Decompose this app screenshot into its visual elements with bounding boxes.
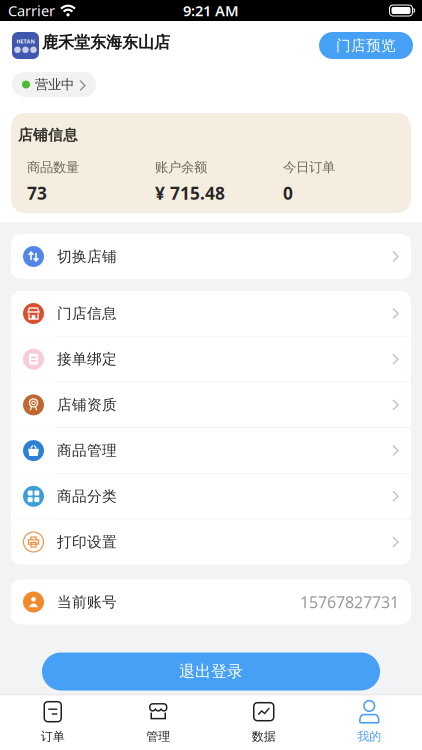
staticText: 订单 [41, 729, 65, 744]
button[interactable]: 接单绑定 [11, 337, 411, 382]
staticText: 商品数量 [27, 159, 79, 175]
button[interactable]: 商品分类 [11, 474, 411, 519]
staticText: 打印设置 [57, 533, 117, 551]
button[interactable]: 门店信息 [11, 291, 411, 336]
staticText: 退出登录 [179, 662, 243, 681]
staticText: ¥ 715.48 [155, 181, 225, 204]
staticText: 接单绑定 [57, 350, 117, 368]
button[interactable]: 门店预览 [319, 32, 413, 59]
staticText: 9:21 AM [183, 1, 239, 20]
staticText: 73 [27, 181, 47, 204]
staticText: 今日订单 [283, 159, 335, 175]
button[interactable]: 切换店铺 [11, 234, 411, 279]
staticText: 切换店铺 [57, 247, 117, 265]
staticText: 商品分类 [57, 487, 117, 505]
staticText: 我的 [357, 729, 381, 744]
staticText: 管理 [146, 729, 170, 744]
staticText: 商品管理 [57, 442, 117, 460]
button[interactable]: 管理 [105, 700, 211, 744]
button[interactable]: 数据 [211, 700, 316, 744]
button[interactable]: 商品管理 [11, 428, 411, 473]
staticText: 店铺资质 [57, 396, 117, 414]
staticText: 当前账号 [57, 593, 117, 611]
staticText: 店铺信息 [18, 126, 78, 144]
staticText: 营业中 [35, 76, 74, 93]
button[interactable]: 营业中 [12, 72, 96, 97]
staticText: 账户余额 [155, 159, 207, 175]
button[interactable]: 退出登录 [42, 652, 380, 690]
staticText: 数据 [252, 729, 276, 744]
staticText: Carrier [8, 1, 55, 20]
button[interactable]: 订单 [0, 700, 105, 744]
button[interactable]: 我的 [316, 700, 422, 744]
button[interactable]: 当前账号 [11, 579, 411, 624]
staticText: 15767827731 [300, 591, 399, 613]
staticText: 0 [283, 181, 293, 204]
staticText: 门店信息 [57, 304, 117, 322]
staticText: HETAN [16, 38, 34, 45]
button[interactable]: 店铺资质 [11, 382, 411, 427]
button[interactable]: 打印设置 [11, 519, 411, 564]
staticText: 门店预览 [336, 36, 396, 54]
staticText: 鹿禾堂东海东山店 [42, 33, 170, 52]
